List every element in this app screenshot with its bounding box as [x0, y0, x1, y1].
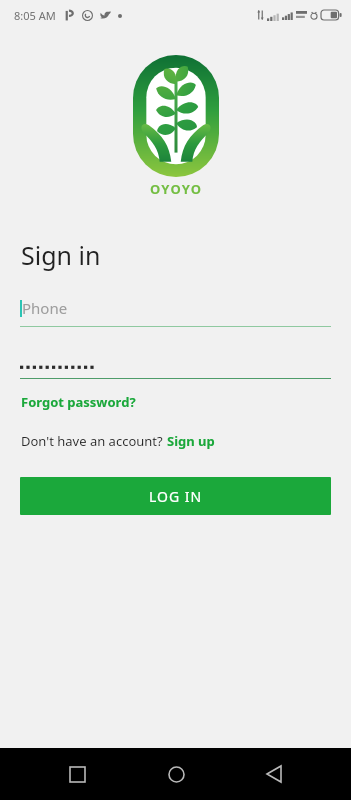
- button[interactable]: [20, 357, 331, 379]
- staticText: Don't have an account?: [21, 432, 167, 450]
- button[interactable]: Sign up: [167, 432, 215, 450]
- button[interactable]: LOG IN: [20, 477, 331, 515]
- button[interactable]: Forgot password?: [21, 393, 136, 411]
- button[interactable]: Phone: [20, 298, 331, 327]
- button[interactable]: Back: [252, 752, 296, 796]
- button[interactable]: Recent apps: [55, 752, 99, 796]
- button[interactable]: Home: [154, 752, 198, 796]
- staticText: 8:05 AM: [14, 8, 56, 23]
- staticText: Sign in: [21, 238, 101, 272]
- staticText: Phone: [22, 298, 68, 318]
- staticText: OYOYO: [150, 180, 203, 198]
- staticText: LOG IN: [149, 487, 203, 506]
